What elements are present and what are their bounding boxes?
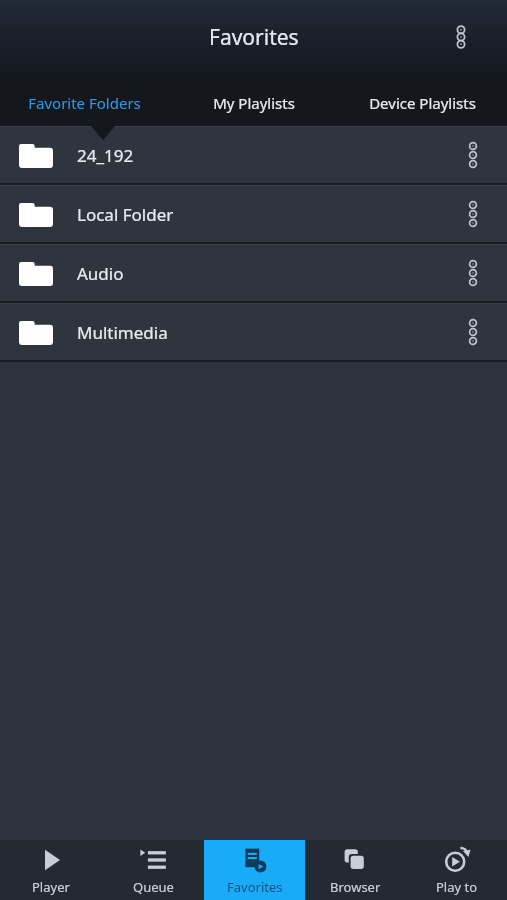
button[interactable]: Multimedia (0, 304, 507, 360)
staticText: Favorites (209, 23, 299, 52)
button[interactable]: Item options for 24_192 (451, 127, 495, 183)
staticText: Favorites (227, 878, 283, 896)
staticText: Browser (330, 878, 381, 896)
staticText: Device Playlists (369, 93, 476, 113)
button[interactable]: 24_192 (0, 127, 507, 183)
button[interactable]: Play to (406, 840, 507, 900)
button[interactable]: Favorite Folders (0, 80, 169, 126)
button[interactable]: My Playlists (169, 80, 338, 126)
button[interactable]: Item options for Audio (451, 245, 495, 301)
button[interactable]: Device Playlists (338, 80, 507, 126)
staticText: Player (32, 878, 70, 896)
staticText: Audio (77, 262, 451, 285)
button[interactable]: Audio (0, 245, 507, 301)
staticText: Favorite Folders (28, 93, 141, 113)
staticText: Multimedia (77, 321, 451, 344)
staticText: Play to (436, 878, 478, 896)
button[interactable]: Local Folder (0, 186, 507, 242)
staticText: 24_192 (77, 144, 451, 167)
button[interactable]: Item options for Multimedia (451, 304, 495, 360)
staticText: My Playlists (213, 93, 295, 113)
staticText: Local Folder (77, 203, 451, 226)
button[interactable]: Browser (305, 840, 406, 900)
button[interactable]: Queue (102, 840, 204, 900)
staticText: Queue (133, 878, 174, 896)
button[interactable]: Player (0, 840, 102, 900)
button[interactable]: Favorites (204, 840, 305, 900)
button[interactable]: More options (443, 19, 479, 55)
button[interactable]: Item options for Local Folder (451, 186, 495, 242)
